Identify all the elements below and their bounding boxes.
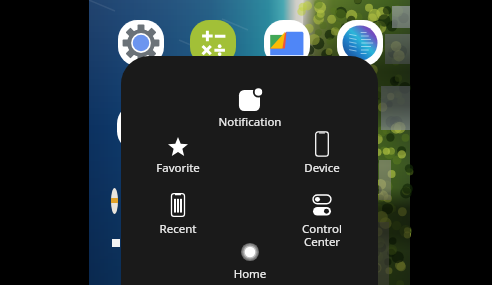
staticText: Favorite	[138, 160, 218, 176]
button[interactable]: Favorite	[138, 128, 218, 202]
button[interactable]: Home	[210, 238, 290, 285]
button[interactable]: Device	[282, 128, 362, 202]
button[interactable]: Calculator	[190, 20, 236, 66]
button[interactable]: Browser	[337, 20, 383, 66]
button[interactable]: Control Center	[282, 190, 362, 276]
button[interactable]: Settings	[118, 20, 164, 66]
staticText: Home	[210, 266, 290, 282]
staticText: Control Center	[282, 221, 362, 249]
staticText: Recent	[138, 221, 218, 237]
button[interactable]: App	[117, 104, 164, 151]
staticText: Notification	[210, 114, 290, 130]
button[interactable]: Files	[264, 20, 310, 66]
button[interactable]: Recent	[138, 190, 218, 264]
button[interactable]: Notification	[210, 82, 290, 156]
staticText: Device	[282, 160, 362, 176]
